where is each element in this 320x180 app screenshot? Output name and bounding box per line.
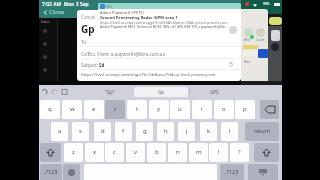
- button[interactable]: j: [178, 122, 195, 141]
- button[interactable]: x: [85, 143, 104, 162]
- staticText: !: [218, 148, 220, 156]
- button[interactable]: i: [192, 100, 212, 119]
- button[interactable]: w: [62, 100, 82, 119]
- staticText: return: [254, 127, 271, 134]
- staticText: Gp: [158, 89, 165, 95]
- button[interactable]: Gp: [134, 87, 188, 97]
- button[interactable]: [39, 38, 57, 51]
- button[interactable]: !: [209, 143, 228, 162]
- staticText: Note: [244, 60, 250, 64]
- staticText: e: [92, 105, 96, 113]
- button[interactable]: Shift: [254, 143, 279, 162]
- staticText: Who?: [244, 38, 251, 42]
- staticText: Subject:: [81, 62, 99, 68]
- staticText: Courtn: [256, 38, 265, 42]
- staticText: f: [122, 127, 125, 135]
- staticText: b: [155, 148, 159, 156]
- button[interactable]: q: [40, 100, 60, 119]
- staticText: Close: [49, 8, 65, 16]
- staticText: l: [229, 127, 231, 135]
- staticText: j: [186, 127, 188, 135]
- button[interactable]: c: [105, 143, 124, 162]
- button[interactable]: e: [84, 100, 104, 119]
- staticText: .?123: [44, 168, 58, 175]
- button[interactable]: Redo: [51, 88, 58, 95]
- staticText: q: [48, 105, 52, 113]
- button[interactable]: o: [214, 100, 234, 119]
- button[interactable]: Emoji: [63, 164, 80, 180]
- button[interactable]: return: [245, 122, 279, 141]
- button[interactable]: p: [235, 100, 255, 119]
- button[interactable]: y: [149, 100, 169, 119]
- button[interactable]: l: [221, 122, 238, 141]
- button[interactable]: n: [168, 143, 187, 162]
- button[interactable]: .?123: [40, 164, 62, 180]
- staticText: h: [164, 127, 168, 135]
- staticText: https://live2.unicwa.com/stugge?t=vDitSA…: [100, 20, 228, 25]
- staticText: Adam Papworth (iPETS): [100, 10, 144, 15]
- staticText: “Gp”: [105, 89, 115, 95]
- button[interactable]: f: [115, 122, 132, 141]
- button[interactable]: t: [127, 100, 147, 119]
- staticText: Cc/Bcc, From: a.papworth@libra.com.au: [81, 51, 166, 57]
- staticText: p: [243, 105, 247, 113]
- staticText: Sd: [99, 62, 105, 68]
- staticText: https://live2.unicwa.com/o/gprTk=Ob&uvc/…: [81, 72, 216, 78]
- button[interactable]: [39, 64, 57, 77]
- button[interactable]: Close: [41, 7, 66, 17]
- button[interactable]: b: [147, 143, 166, 162]
- staticText: c: [113, 148, 116, 156]
- staticText: n: [176, 148, 180, 156]
- staticText: s: [79, 127, 82, 135]
- button[interactable]: Undo: [41, 88, 48, 95]
- staticText: o: [222, 105, 226, 113]
- staticText: r: [114, 105, 117, 113]
- button[interactable]: a: [51, 122, 68, 141]
- button[interactable]: m: [189, 143, 208, 162]
- button[interactable]: r: [105, 100, 125, 119]
- button[interactable]: Hide keyboard: [248, 164, 278, 180]
- button[interactable]: [39, 25, 57, 38]
- staticText: y: [157, 105, 161, 113]
- button[interactable]: GPS: [187, 87, 241, 96]
- button[interactable]: .?123: [220, 164, 244, 180]
- staticText: d: [101, 127, 105, 135]
- staticText: x: [93, 148, 97, 156]
- button[interactable]: h: [157, 122, 174, 141]
- staticText: Ground Penetrating Radar (GPR) scan 1: [100, 15, 178, 20]
- staticText: g: [143, 127, 147, 135]
- button[interactable]: Cancel: [80, 13, 97, 21]
- button[interactable]: z: [64, 143, 83, 162]
- staticText: u: [178, 105, 182, 113]
- staticText: a: [58, 127, 62, 135]
- staticText: Inbox: [41, 20, 50, 24]
- button[interactable]: Mail: [98, 3, 241, 29]
- staticText: t: [136, 105, 139, 113]
- button[interactable]: “Gp”: [84, 87, 136, 96]
- staticText: ?: [238, 148, 241, 156]
- button[interactable]: s: [72, 122, 89, 141]
- staticText: .?123: [225, 168, 239, 175]
- staticText: w: [70, 105, 75, 113]
- button[interactable]: ?: [230, 143, 249, 162]
- staticText: m: [196, 148, 202, 156]
- button[interactable]: [39, 51, 57, 64]
- staticText: 99%: [263, 2, 270, 6]
- staticText: To:: [81, 39, 88, 45]
- button[interactable]: v: [126, 143, 145, 162]
- staticText: Gp: [81, 22, 95, 36]
- button[interactable]: Shift: [40, 143, 61, 162]
- button[interactable]: u: [170, 100, 190, 119]
- staticText: k: [207, 127, 211, 135]
- button[interactable]: g: [136, 122, 153, 141]
- button[interactable]: k: [200, 122, 217, 141]
- staticText: Mail: [106, 5, 112, 9]
- button[interactable]: Send: [229, 26, 237, 34]
- staticText: GPS: [210, 89, 219, 95]
- button[interactable]: d: [94, 122, 111, 141]
- button[interactable]: Paste: [61, 88, 68, 95]
- button[interactable]: Backspace: [260, 100, 279, 119]
- staticText: Adam Papworth M01 Technical BCRC VIN +41…: [100, 24, 228, 29]
- staticText: 7:02 AM Mon 3 Sep: [42, 1, 89, 8]
